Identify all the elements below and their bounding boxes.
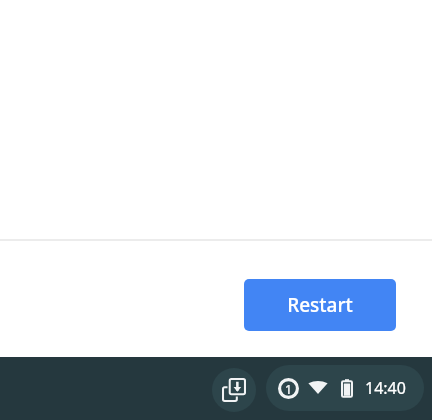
button[interactable]: Downloads [212, 368, 256, 412]
button[interactable]: Restart [244, 279, 396, 331]
staticText: Restart [287, 292, 353, 318]
staticText: 1 [285, 381, 292, 397]
staticText: 14:40 [365, 377, 406, 399]
button[interactable]: 1 [266, 365, 424, 411]
